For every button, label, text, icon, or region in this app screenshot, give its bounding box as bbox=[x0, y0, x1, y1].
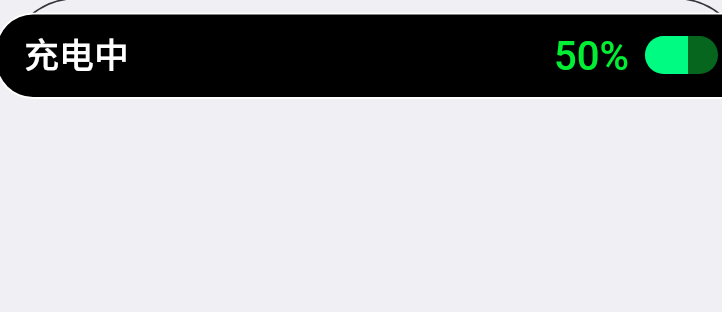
button[interactable]: Battery 50 percent, charging bbox=[645, 36, 718, 74]
button[interactable]: 50% bbox=[554, 33, 629, 80]
staticText: 50% bbox=[554, 33, 629, 80]
staticText: 充电中 bbox=[24, 27, 130, 78]
button[interactable] bbox=[0, 15, 722, 98]
button[interactable]: 充电中 bbox=[24, 27, 130, 78]
